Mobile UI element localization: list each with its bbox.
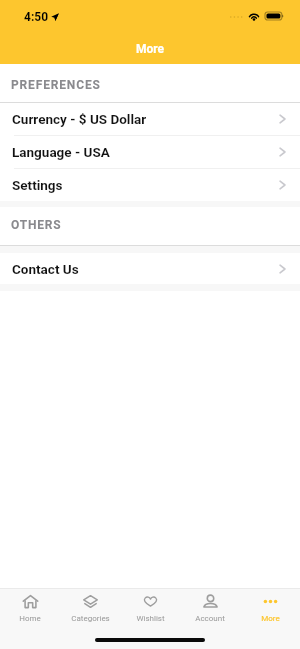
- staticText: OTHERS: [11, 218, 62, 232]
- button[interactable]: Contact Us: [0, 253, 300, 284]
- staticText: Home: [19, 614, 41, 623]
- staticText: Settings: [12, 177, 63, 193]
- staticText: More: [136, 42, 165, 56]
- button[interactable]: Language - USA: [0, 136, 300, 168]
- button[interactable]: Categories: [60, 589, 120, 625]
- staticText: Contact Us: [12, 261, 79, 277]
- button[interactable]: Wishlist: [120, 589, 180, 625]
- button[interactable]: Currency - $ US Dollar: [0, 103, 300, 135]
- staticText: 4:50: [24, 10, 49, 24]
- staticText: More: [261, 614, 280, 623]
- staticText: Wishlist: [136, 614, 165, 623]
- button[interactable]: Settings: [0, 169, 300, 201]
- staticText: Language - USA: [12, 144, 110, 160]
- staticText: Account: [195, 614, 225, 623]
- staticText: Categories: [71, 614, 110, 623]
- button[interactable]: More: [240, 589, 300, 625]
- button[interactable]: Home: [0, 589, 60, 625]
- staticText: PREFERENCES: [11, 78, 101, 92]
- button[interactable]: Account: [180, 589, 240, 625]
- staticText: Currency - $ US Dollar: [12, 111, 147, 127]
